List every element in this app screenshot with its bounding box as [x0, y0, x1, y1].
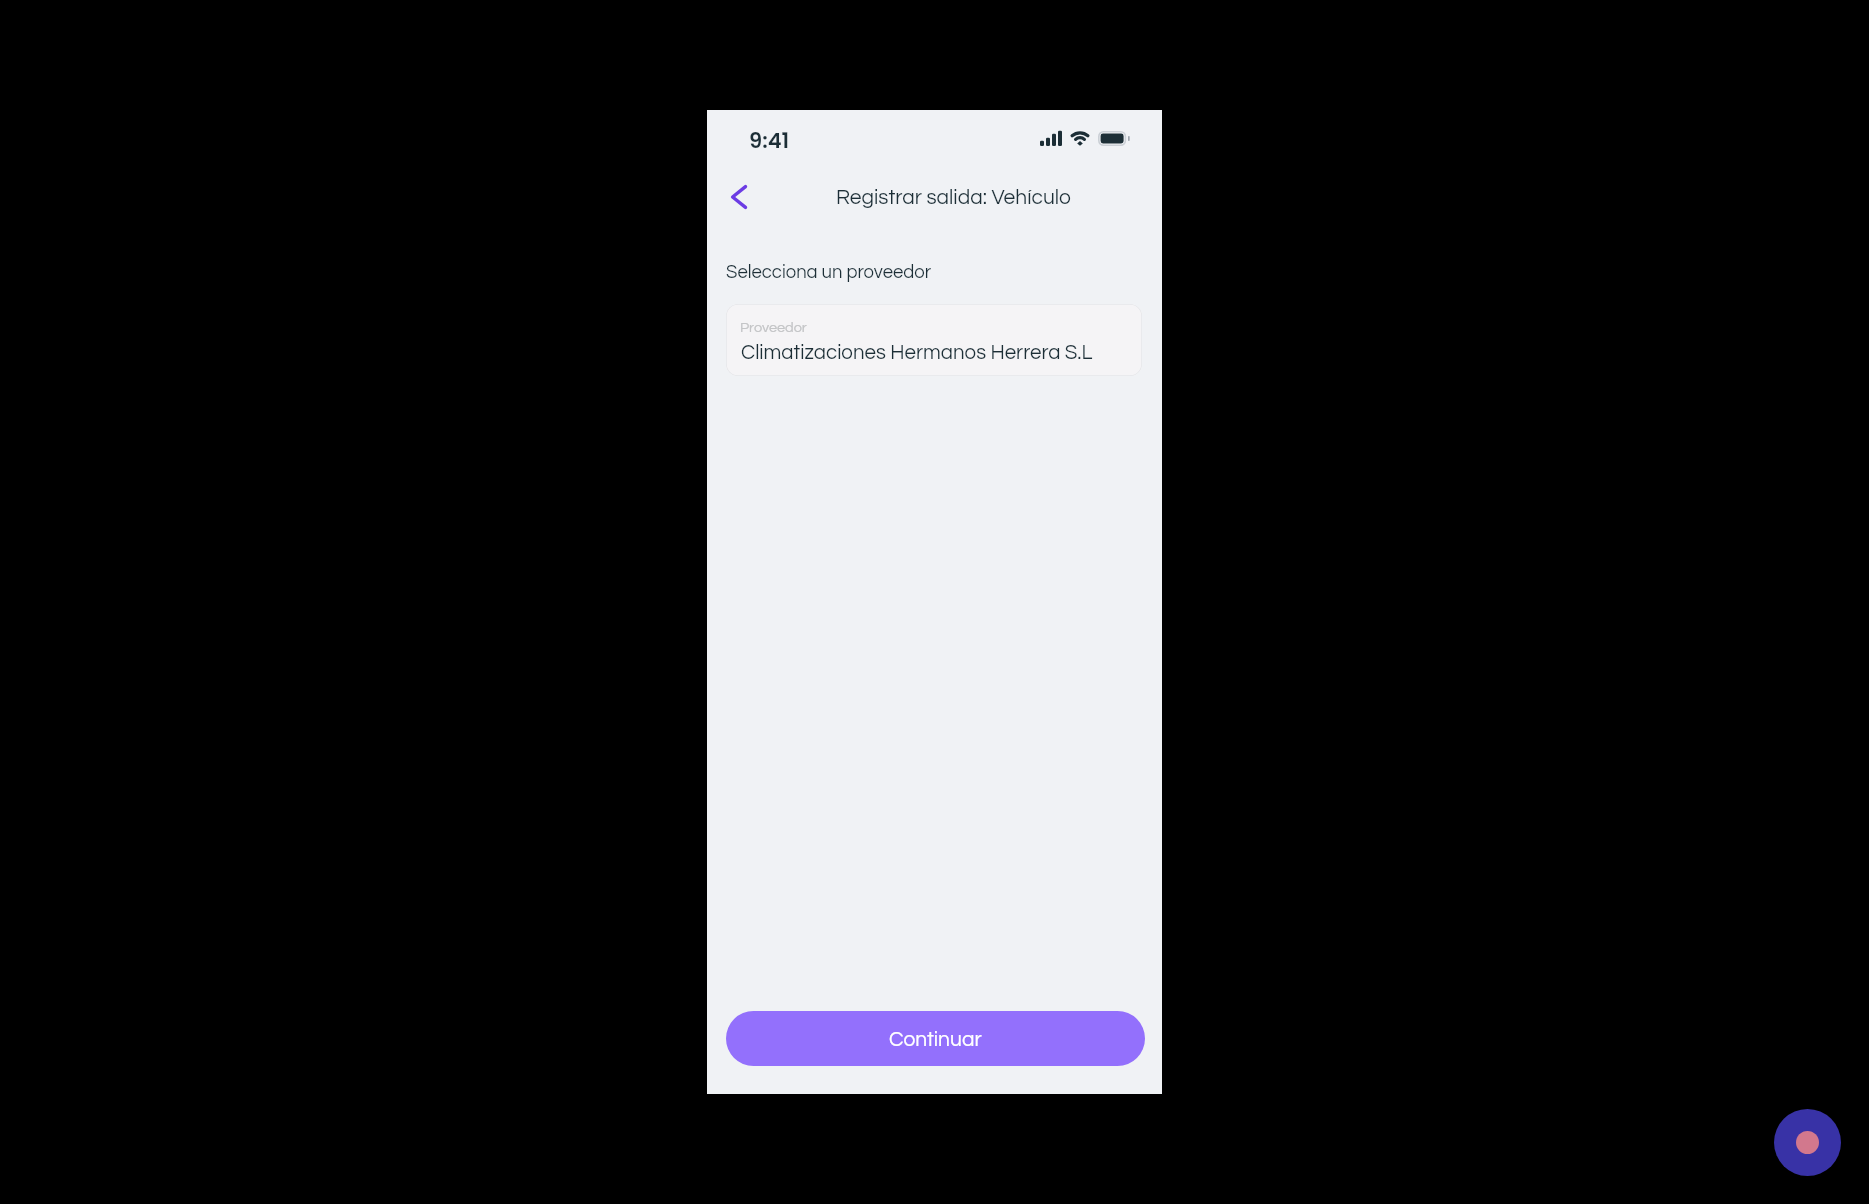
button[interactable]: Continuar — [726, 1011, 1145, 1066]
staticText: Climatizaciones Hermanos Herrera S.L — [741, 342, 1093, 363]
staticText: Selecciona un proveedor — [726, 263, 932, 282]
button[interactable]: Proveedor — [726, 304, 1142, 376]
button[interactable]: Record — [1774, 1109, 1841, 1176]
button[interactable]: Back — [719, 173, 759, 221]
staticText: 9:41 — [749, 126, 790, 155]
staticText: Registrar salida: Vehículo — [836, 187, 1071, 209]
staticText: Continuar — [889, 1029, 982, 1051]
staticText: Proveedor — [740, 320, 807, 335]
